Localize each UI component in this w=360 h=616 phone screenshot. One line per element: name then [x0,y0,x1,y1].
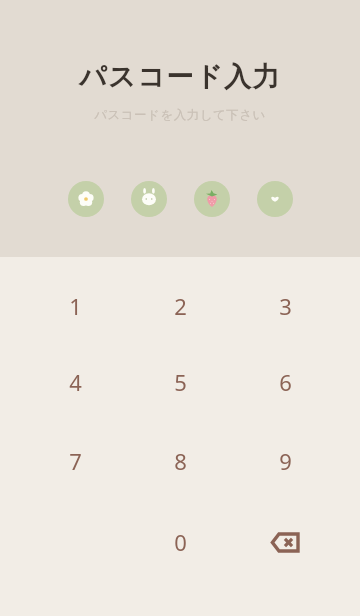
staticText: パスコードを入力して下さい [0,107,360,123]
button[interactable]: 3 [243,276,327,336]
button[interactable]: Delete [243,512,327,572]
staticText: 5 [174,367,187,397]
staticText: パスコード入力 [0,60,360,94]
staticText: 8 [174,446,187,476]
staticText: 3 [279,291,292,321]
button[interactable]: 1 [33,276,117,336]
staticText: 9 [279,446,292,476]
button[interactable]: 6 [243,352,327,412]
button[interactable]: 5 [138,352,222,412]
button[interactable]: 4 [33,352,117,412]
button[interactable]: Passcode slot 4 [257,181,293,217]
button[interactable]: 7 [33,431,117,491]
staticText: 4 [69,367,82,397]
button[interactable]: Passcode slot 1 [68,181,104,217]
button[interactable]: Passcode slot 2 [131,181,167,217]
staticText: 2 [174,291,187,321]
button[interactable]: 9 [243,431,327,491]
staticText: 7 [69,446,82,476]
button[interactable]: 0 [138,512,222,572]
staticText: 1 [69,291,82,321]
staticText: 6 [279,367,292,397]
button[interactable]: 8 [138,431,222,491]
button[interactable]: Passcode slot 3 [194,181,230,217]
staticText: 0 [174,527,187,557]
button[interactable]: 2 [138,276,222,336]
